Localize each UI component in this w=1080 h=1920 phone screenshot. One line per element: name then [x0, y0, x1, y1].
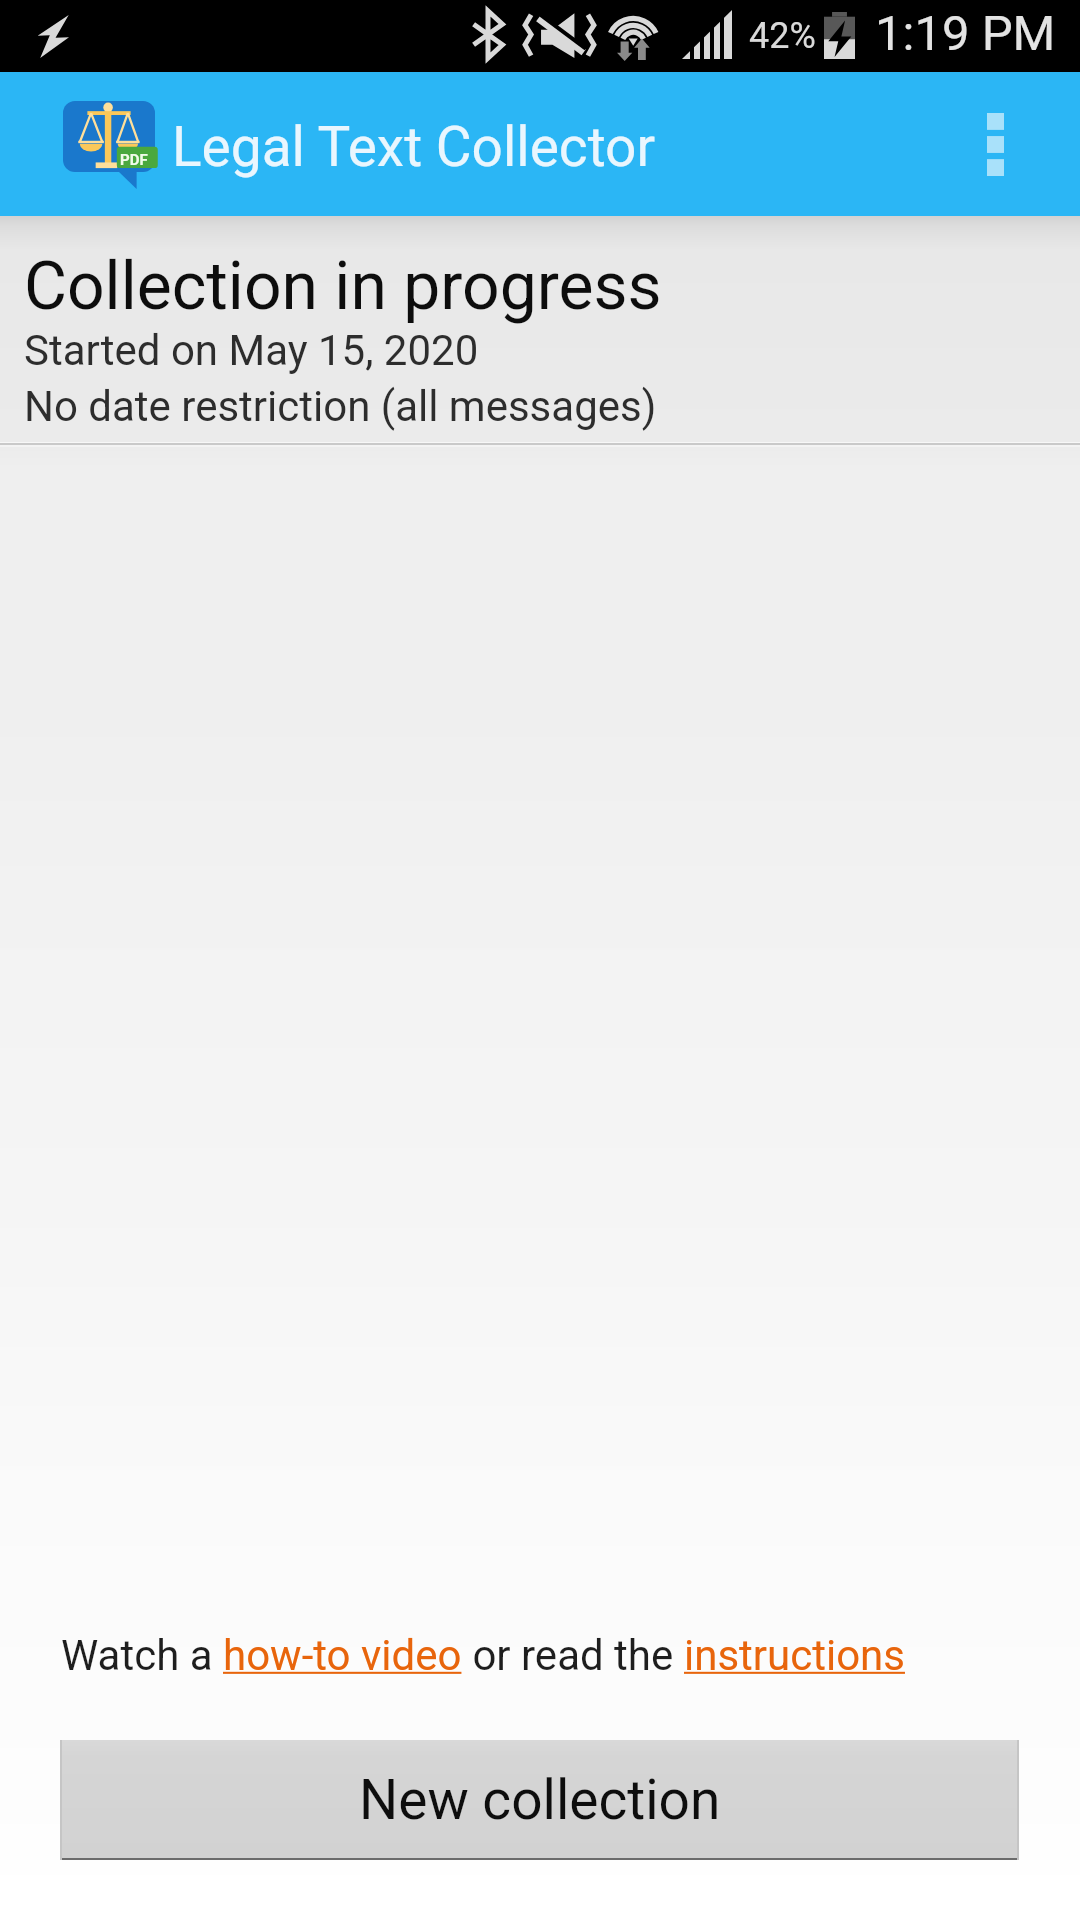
staticText: Started on May 15, 2020: [24, 326, 479, 375]
button[interactable]: how-to video: [223, 1631, 462, 1680]
staticText: New collection: [359, 1768, 721, 1832]
button[interactable]: New collection: [60, 1740, 1019, 1860]
staticText: 1:19 PM: [875, 5, 1056, 62]
button[interactable]: More options: [910, 72, 1080, 216]
staticText: Collection in progress: [24, 248, 662, 325]
staticText: or read the: [462, 1631, 684, 1680]
staticText: 42%: [749, 15, 816, 57]
staticText: how-to video: [223, 1631, 462, 1680]
staticText: No date restriction (all messages): [24, 382, 657, 431]
button[interactable]: instructions: [684, 1631, 905, 1680]
staticText: instructions: [684, 1631, 905, 1680]
staticText: Legal Text Collector: [172, 115, 656, 179]
staticText: PDF: [120, 151, 148, 169]
staticText: Watch a: [61, 1631, 223, 1680]
